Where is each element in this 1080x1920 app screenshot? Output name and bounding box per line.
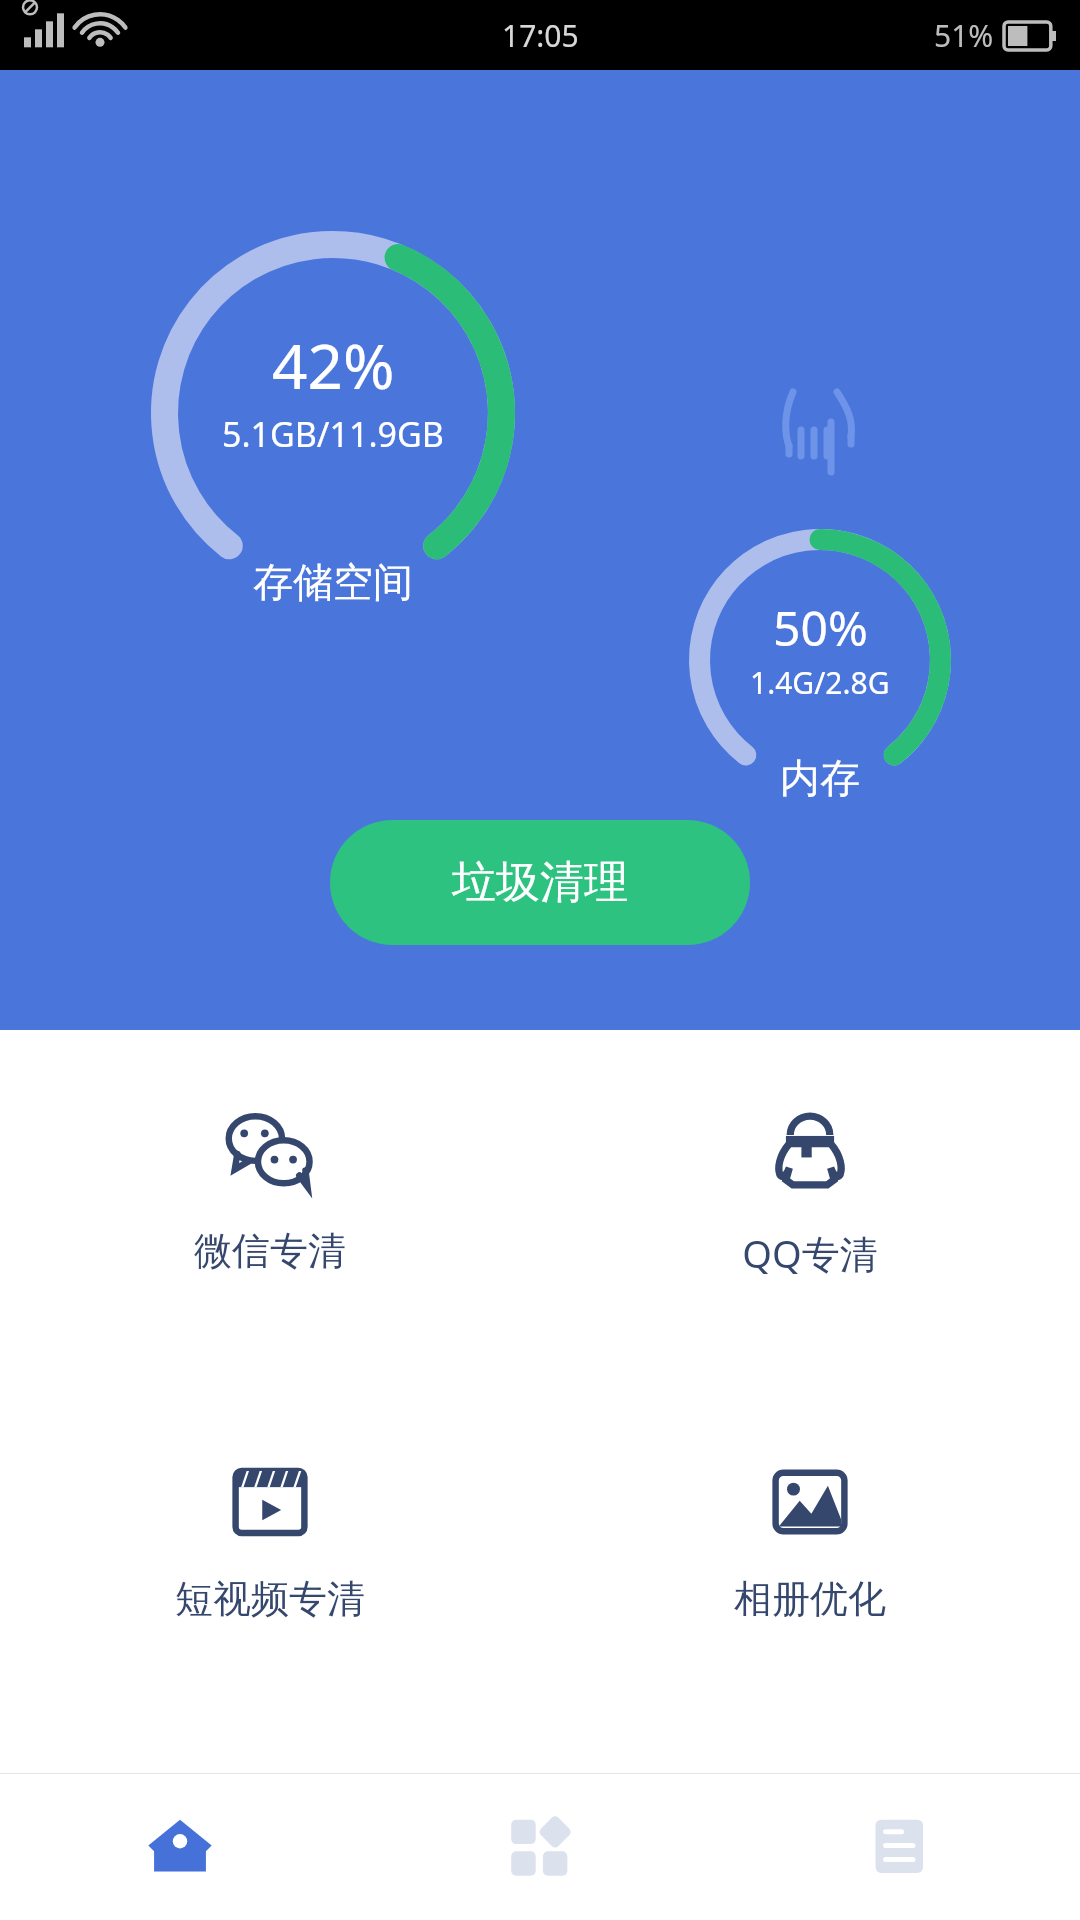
button[interactable]: Home xyxy=(0,1774,360,1920)
button[interactable]: List xyxy=(720,1774,1080,1920)
button[interactable]: 垃圾清理 xyxy=(330,820,750,945)
staticText: 42% xyxy=(272,323,395,407)
staticText: 17:05 xyxy=(502,15,579,56)
button[interactable]: 微信专清 xyxy=(0,1101,540,1285)
staticText: QQ专清 xyxy=(742,1227,878,1279)
staticText: 5.1GB/11.9GB xyxy=(222,411,444,457)
staticText: 垃圾清理 xyxy=(452,855,628,910)
staticText: 内存 xyxy=(780,753,860,803)
button[interactable]: 短视频专清 xyxy=(0,1449,540,1633)
staticText: 存储空间 xyxy=(253,557,413,607)
staticText: 1.4G/2.8G xyxy=(750,662,890,703)
staticText: 微信专清 xyxy=(194,1227,346,1275)
staticText: 51% xyxy=(934,15,994,56)
staticText: 短视频专清 xyxy=(175,1575,365,1623)
staticText: 相册优化 xyxy=(734,1575,886,1623)
button[interactable]: 相册优化 xyxy=(540,1449,1080,1633)
other: Tap xyxy=(775,380,875,480)
staticText: 50% xyxy=(773,595,868,660)
button[interactable]: Tools xyxy=(360,1774,720,1920)
button[interactable]: QQ专清 xyxy=(540,1101,1080,1289)
